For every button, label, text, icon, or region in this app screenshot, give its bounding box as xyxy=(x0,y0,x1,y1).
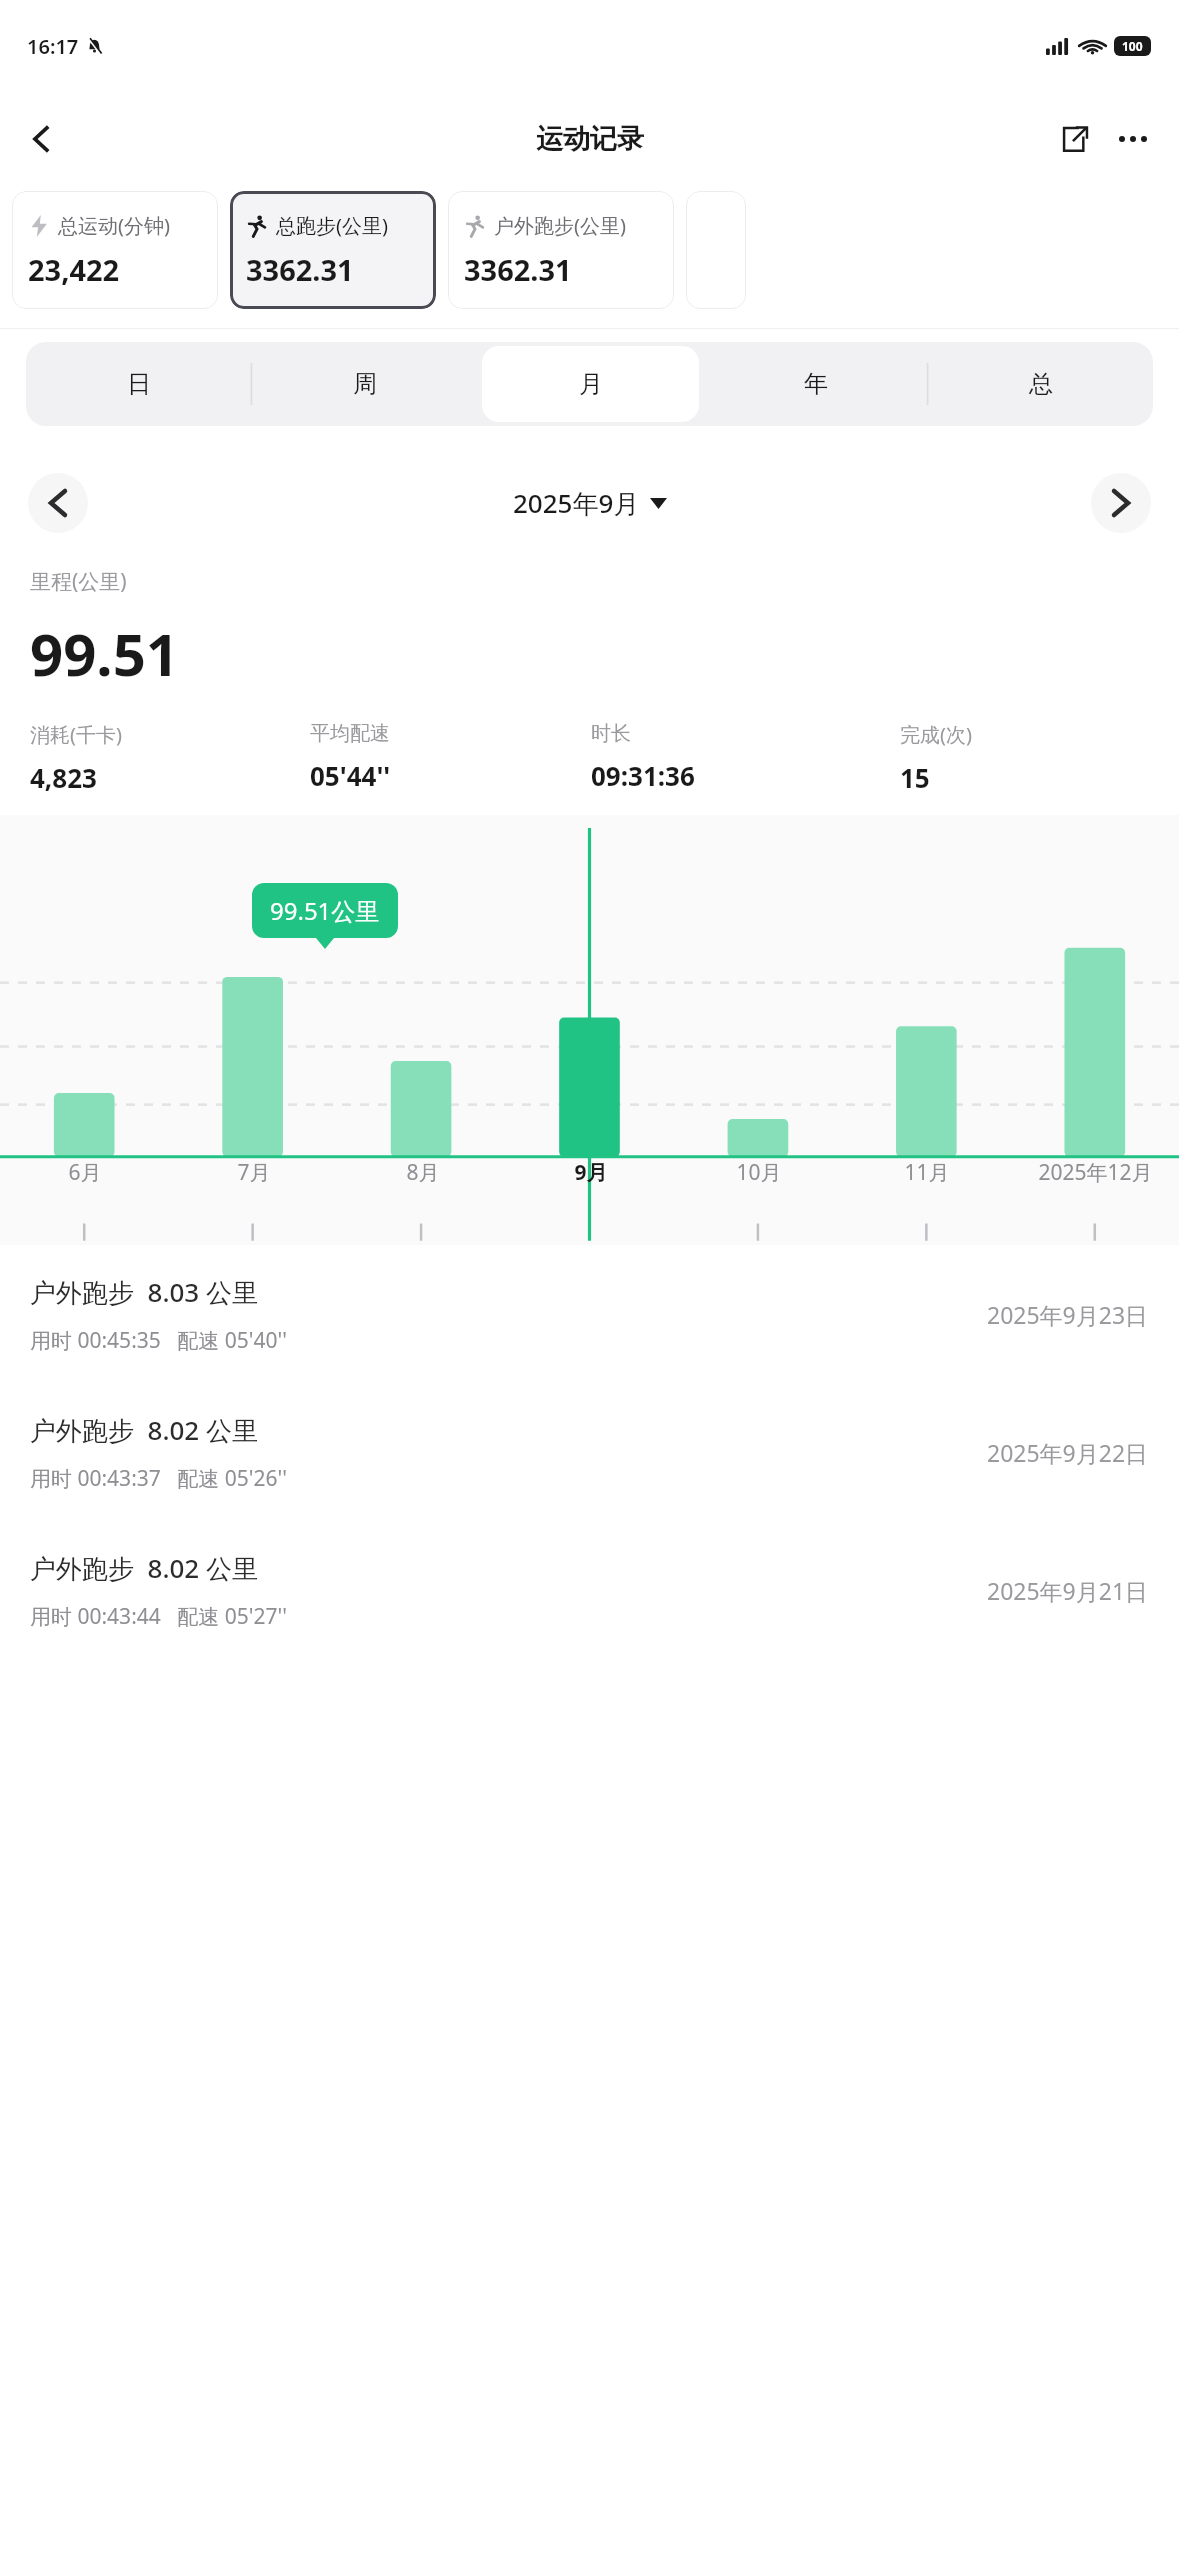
button[interactable]: 总 xyxy=(932,346,1149,422)
staticText: 户外跑步(公里) xyxy=(494,212,626,239)
staticText: 户外跑步 8.02 公里 xyxy=(30,1550,258,1586)
button[interactable]: 日 xyxy=(30,346,248,422)
staticText: 10月 xyxy=(736,1158,782,1187)
button[interactable]: Share xyxy=(1047,111,1103,167)
staticText: 消耗(千卡) xyxy=(30,721,122,748)
staticText: 100 xyxy=(1122,38,1143,54)
staticText: 用时 00:43:44 配速 05'27'' xyxy=(30,1602,287,1631)
staticText: 3362.31 xyxy=(464,250,572,289)
staticText: 日 xyxy=(127,369,151,399)
staticText: 用时 00:43:37 配速 05'26'' xyxy=(30,1464,287,1493)
staticText: 户外跑步 8.03 公里 xyxy=(30,1274,258,1310)
button[interactable]: 户外跑步 8.02 公里 xyxy=(0,1383,1179,1521)
staticText: 年 xyxy=(804,369,828,399)
staticText: 05'44'' xyxy=(310,758,391,793)
button[interactable] xyxy=(686,191,746,309)
staticText: 9月 xyxy=(574,1158,608,1187)
staticText: 2025年9月23日 xyxy=(987,1299,1149,1330)
staticText: 16:17 xyxy=(27,33,79,60)
staticText: 2025年9月22日 xyxy=(987,1437,1149,1468)
button[interactable]: 总跑步(公里) xyxy=(230,191,436,309)
staticText: 平均配速 xyxy=(310,721,390,746)
staticText: 99.51 xyxy=(30,614,180,693)
staticText: 2025年9月21日 xyxy=(987,1575,1149,1606)
staticText: 09:31:36 xyxy=(591,758,695,793)
button[interactable]: 月 xyxy=(482,346,699,422)
staticText: 时长 xyxy=(591,721,631,746)
staticText: 3362.31 xyxy=(246,250,354,289)
button[interactable]: 总运动(分钟) xyxy=(12,191,218,309)
button[interactable]: 周 xyxy=(256,346,474,422)
staticText: 里程(公里) xyxy=(30,567,127,596)
staticText: 用时 00:45:35 配速 05'40'' xyxy=(30,1326,287,1355)
staticText: 4,823 xyxy=(30,760,97,795)
button[interactable]: Back xyxy=(14,111,70,167)
staticText: 99.51公里 xyxy=(270,894,380,927)
staticText: 总跑步(公里) xyxy=(276,212,388,239)
staticText: 户外跑步 8.02 公里 xyxy=(30,1412,258,1448)
staticText: 运动记录 xyxy=(536,122,644,156)
button[interactable]: 户外跑步 8.02 公里 xyxy=(0,1521,1179,1659)
button[interactable]: 户外跑步(公里) xyxy=(448,191,674,309)
button[interactable]: 户外跑步 8.03 公里 xyxy=(0,1245,1179,1383)
button[interactable]: Previous month xyxy=(28,473,88,533)
button[interactable]: 年 xyxy=(707,346,924,422)
staticText: 周 xyxy=(353,369,377,399)
staticText: 11月 xyxy=(904,1158,950,1187)
staticText: 完成(次) xyxy=(900,721,972,748)
staticText: 23,422 xyxy=(28,250,120,289)
button[interactable]: Next month xyxy=(1091,473,1151,533)
staticText: 月 xyxy=(579,369,603,399)
staticText: 2025年12月 xyxy=(1038,1158,1153,1187)
staticText: 7月 xyxy=(237,1158,271,1187)
staticText: 6月 xyxy=(68,1158,102,1187)
staticText: 15 xyxy=(900,760,930,795)
staticText: 8月 xyxy=(406,1158,440,1187)
staticText: 2025年9月 xyxy=(513,485,640,521)
staticText: 总运动(分钟) xyxy=(58,212,170,239)
staticText: 总 xyxy=(1029,369,1053,399)
button[interactable]: More options xyxy=(1105,111,1161,167)
